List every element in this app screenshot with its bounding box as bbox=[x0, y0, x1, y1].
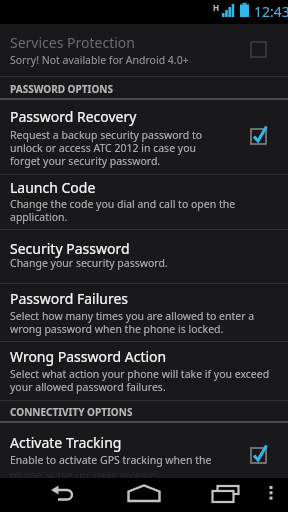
staticText: Security Password bbox=[10, 239, 130, 258]
staticText: Request a backup security password to un… bbox=[10, 128, 203, 168]
button[interactable] bbox=[38, 478, 86, 512]
button[interactable] bbox=[0, 174, 288, 229]
button[interactable] bbox=[0, 229, 288, 283]
staticText: Password Failures bbox=[10, 289, 129, 308]
staticText: 12:43 bbox=[254, 2, 288, 21]
button[interactable] bbox=[0, 423, 288, 478]
staticText: Activate Tracking bbox=[10, 433, 122, 452]
staticText: Select how many times you are allowed to… bbox=[10, 309, 255, 336]
staticText: Change the code you dial and call to ope… bbox=[10, 197, 236, 224]
staticText: Select what action your phone will take … bbox=[10, 367, 270, 394]
staticText: Wrong Password Action bbox=[10, 347, 167, 366]
button[interactable] bbox=[0, 100, 288, 174]
staticText: Services Protection bbox=[10, 33, 135, 52]
staticText: Password Recovery bbox=[10, 107, 137, 126]
staticText: Sorry! Not available for Android 4.0+ bbox=[10, 53, 189, 67]
button[interactable] bbox=[204, 478, 248, 512]
button[interactable] bbox=[0, 24, 288, 76]
staticText: Launch Code bbox=[10, 178, 96, 197]
button[interactable] bbox=[0, 283, 288, 341]
staticText: H bbox=[213, 2, 220, 13]
staticText: phone 'wake up' code receives. bbox=[10, 468, 163, 482]
button[interactable] bbox=[122, 478, 166, 512]
staticText: CONNECTIVITY OPTIONS bbox=[10, 405, 133, 419]
staticText: Change your security password. bbox=[10, 256, 168, 270]
staticText: PASSWORD OPTIONS bbox=[10, 82, 113, 96]
button[interactable] bbox=[262, 478, 282, 512]
button[interactable] bbox=[0, 341, 288, 400]
staticText: Enable to activate GPS tracking when the bbox=[10, 453, 212, 467]
